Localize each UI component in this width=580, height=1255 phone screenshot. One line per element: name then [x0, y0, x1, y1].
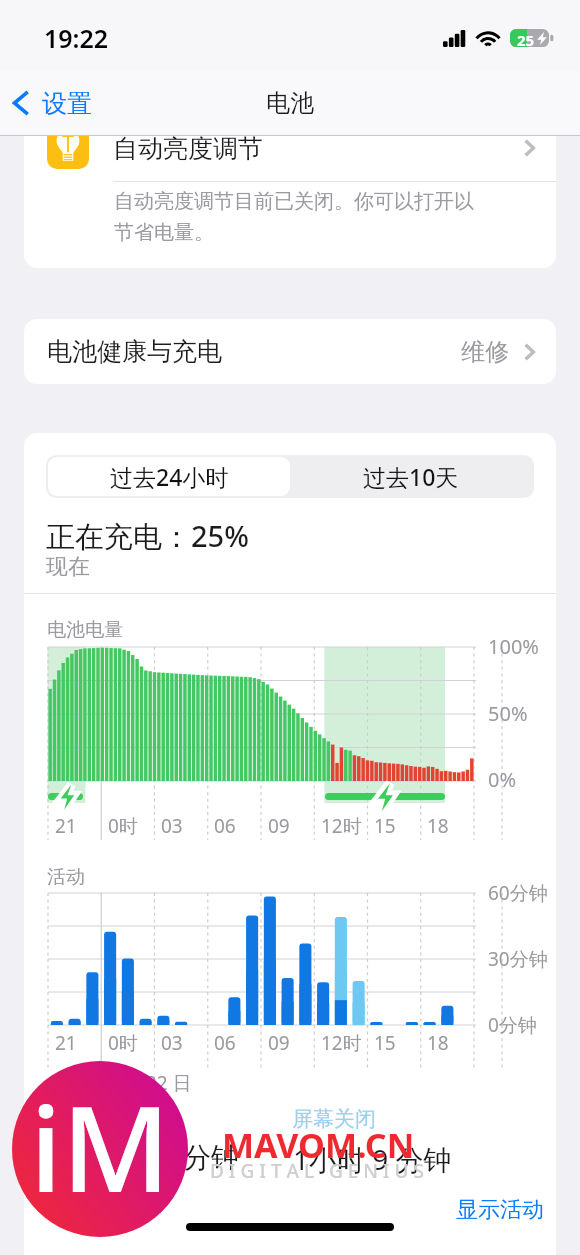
button[interactable]: 过去24小时 — [48, 457, 290, 496]
staticText: 现在 — [46, 553, 90, 581]
button[interactable]: 过去10天 — [290, 457, 532, 496]
button[interactable]: 电池健康与充电 — [24, 319, 556, 384]
staticText: 03 — [161, 813, 183, 839]
staticText: App 用量 — [76, 1190, 163, 1219]
button[interactable]: 设置 — [11, 77, 92, 129]
staticText: 50% — [488, 700, 528, 727]
staticText: 0时 — [108, 813, 138, 839]
staticText: iM — [30, 1066, 171, 1227]
staticText: 100% — [488, 633, 539, 660]
button[interactable]: 自动亮度调节 — [24, 115, 556, 181]
staticText: 06 — [214, 1030, 236, 1056]
staticText: 活动 — [47, 865, 85, 889]
staticText: 0% — [488, 766, 517, 793]
staticText: 屏幕关闭 — [292, 1106, 376, 1132]
staticText: 18 — [427, 813, 449, 839]
staticText: 12时 — [321, 813, 362, 839]
staticText: 15 — [374, 1030, 396, 1056]
staticText: 过去10天 — [363, 461, 459, 492]
staticText: MAVOM.CN — [222, 1122, 415, 1168]
staticText: 12时 — [321, 1030, 362, 1056]
button[interactable]: 显示活动 — [456, 1196, 544, 1224]
staticText: 电池健康与充电 — [47, 336, 222, 367]
staticText: 1小时 9 分钟 — [293, 1140, 452, 1178]
staticText: 正在充电：25% — [46, 516, 249, 556]
staticText: 19:22 — [44, 21, 109, 55]
staticText: 设置 — [42, 88, 92, 119]
staticText: 30分钟 — [488, 946, 548, 972]
staticText: 15 — [374, 813, 396, 839]
staticText: 分钟 — [183, 1140, 239, 1175]
staticText: 09 — [268, 1030, 290, 1056]
staticText: 18 — [427, 1030, 449, 1056]
staticText: 09 — [268, 813, 290, 839]
staticText: 0分钟 — [488, 1012, 537, 1038]
staticText: 电池 — [266, 88, 314, 118]
staticText: 维修 — [461, 337, 509, 367]
staticText: 自动亮度调节目前已关闭。你可以打开以节省电量。 — [114, 189, 476, 245]
staticText: 0时 — [108, 1030, 138, 1056]
staticText: 自动亮度调节 — [113, 133, 263, 164]
staticText: 电池电量 — [47, 618, 123, 642]
staticText: D I G I T A L G E N I U S — [210, 1158, 424, 1184]
staticText: 21 — [55, 1030, 77, 1056]
staticText: 22 日 — [146, 1070, 192, 1096]
staticText: 21 — [55, 813, 77, 839]
staticText: 60分钟 — [488, 880, 548, 906]
staticText: 过去24小时 — [110, 461, 229, 492]
staticText: 25 — [517, 30, 535, 48]
staticText: 03 — [161, 1030, 183, 1056]
staticText: 06 — [214, 813, 236, 839]
